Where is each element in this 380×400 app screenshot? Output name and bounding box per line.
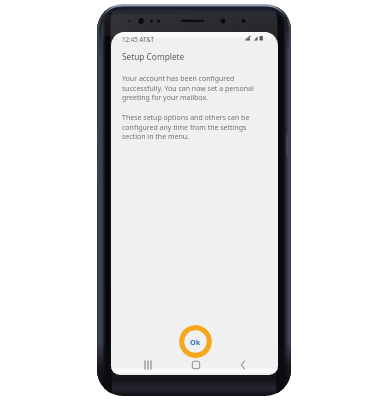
staticText: These setup options and others can be co… [122,113,258,141]
staticText: Ok [190,337,201,347]
staticText: 12:45 AT&T [122,35,154,43]
button[interactable]: Home [186,357,206,373]
button[interactable]: Back [233,357,253,373]
button[interactable]: Recent apps [138,357,158,373]
button[interactable]: Ok [179,325,212,358]
staticText: Your account has been configured success… [122,74,258,102]
staticText: Setup Complete [122,51,185,62]
